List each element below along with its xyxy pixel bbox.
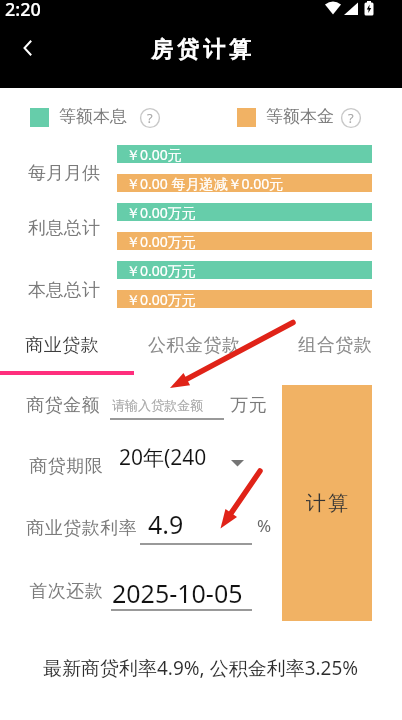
staticText: 首次还款 — [29, 580, 103, 603]
staticText: 商业贷款 — [25, 334, 99, 357]
button[interactable]: 公积金贷款 — [134, 322, 268, 366]
staticText: 4.9 — [148, 507, 184, 541]
staticText: 商贷金额 — [26, 394, 100, 417]
staticText: % — [257, 514, 272, 537]
staticText: 商业贷款利率 — [26, 517, 137, 540]
button[interactable]: 2025-10-05 — [111, 576, 252, 608]
staticText: 2:20 — [5, 0, 41, 22]
staticText: ￥0.00万元 — [126, 203, 196, 221]
button[interactable]: 4.9 — [140, 507, 252, 543]
button[interactable]: ? — [140, 108, 160, 128]
staticText: 20年(240 — [119, 443, 207, 472]
staticText: 计算 — [305, 491, 349, 516]
staticText: 2025-10-05 — [112, 576, 243, 608]
staticText: 等额本息 — [59, 106, 127, 127]
button[interactable] — [16, 34, 44, 62]
button[interactable]: 商业贷款 — [0, 322, 134, 366]
button[interactable]: 计算 — [282, 385, 372, 621]
staticText: ￥0.00 每月递减￥0.00元 — [126, 174, 284, 192]
staticText: 商贷期限 — [29, 455, 103, 478]
staticText: 公积金贷款 — [148, 334, 241, 357]
staticText: 利息总计 — [28, 217, 100, 240]
staticText: ￥0.00万元 — [126, 290, 196, 308]
staticText: ￥0.00万元 — [126, 232, 196, 250]
button[interactable]: ? — [341, 108, 361, 128]
staticText: ￥0.00万元 — [126, 261, 196, 279]
staticText: ? — [348, 109, 354, 127]
button[interactable]: 请输入贷款金额 — [110, 394, 224, 420]
button[interactable]: 20年(240 — [115, 443, 250, 477]
staticText: 等额本金 — [266, 106, 334, 127]
staticText: 请输入贷款金额 — [112, 397, 203, 413]
staticText: 每月月供 — [28, 162, 100, 185]
staticText: ￥0.00元 — [126, 145, 182, 163]
button[interactable]: 组合贷款 — [268, 322, 402, 366]
staticText: 本息总计 — [28, 279, 100, 302]
staticText: ? — [147, 109, 153, 127]
staticText: 房贷计算 — [149, 36, 253, 64]
staticText: 组合贷款 — [298, 334, 372, 357]
staticText: 万元 — [230, 394, 267, 417]
staticText: 最新商贷利率4.9%, 公积金利率3.25% — [43, 655, 359, 681]
